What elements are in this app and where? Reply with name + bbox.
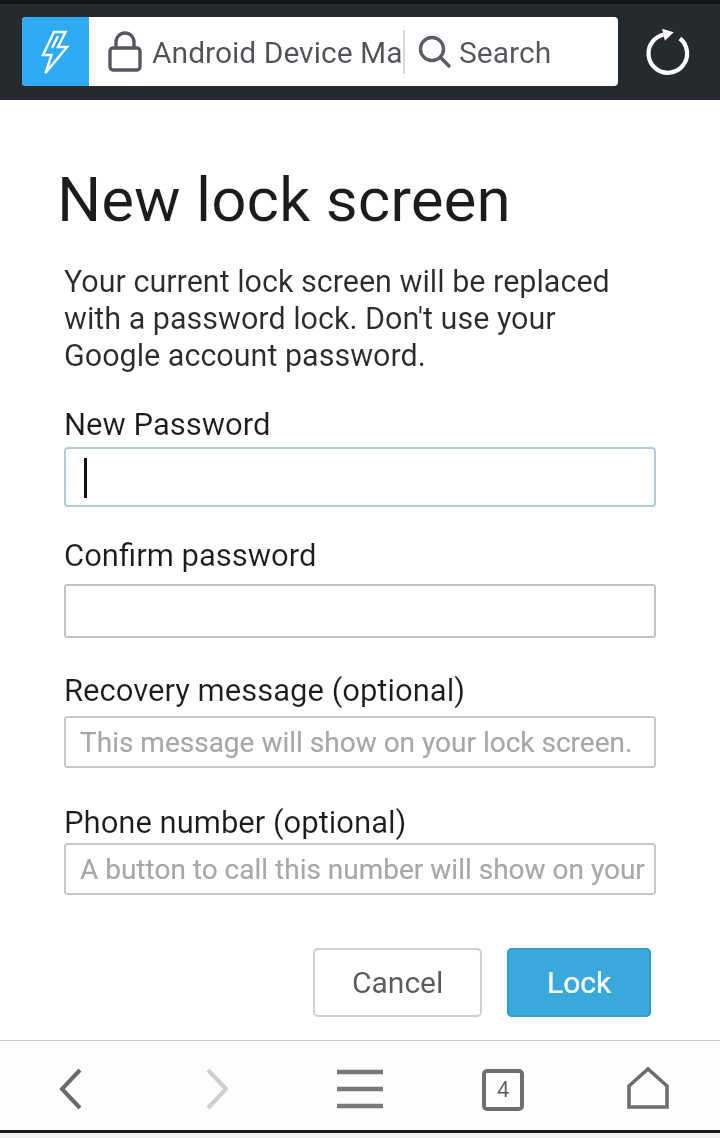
staticText: Your current lock screen will be replace… xyxy=(64,264,610,374)
button[interactable] xyxy=(627,1067,669,1109)
button[interactable] xyxy=(64,584,656,638)
button[interactable]: 4 xyxy=(482,1069,524,1111)
button[interactable]: Android Device Ma xyxy=(22,17,618,86)
button[interactable]: A button to call this number will show o… xyxy=(64,843,656,895)
button[interactable] xyxy=(337,1069,383,1109)
button[interactable] xyxy=(643,28,693,78)
staticText: New lock screen xyxy=(57,163,511,236)
button[interactable] xyxy=(64,447,656,507)
staticText: 4 xyxy=(497,1077,510,1103)
button[interactable] xyxy=(196,1068,236,1110)
staticText: Phone number (optional) xyxy=(64,804,407,840)
staticText: Confirm password xyxy=(64,537,317,573)
button[interactable]: Lock xyxy=(507,948,651,1017)
staticText: A button to call this number will show o… xyxy=(80,853,656,886)
staticText: Recovery message (optional) xyxy=(64,672,466,708)
staticText: This message will show on your lock scre… xyxy=(80,726,633,759)
staticText: New Password xyxy=(64,406,271,442)
button[interactable]: This message will show on your lock scre… xyxy=(64,716,656,768)
staticText: Search xyxy=(459,35,552,70)
button[interactable] xyxy=(52,1068,92,1110)
staticText: Lock xyxy=(547,965,612,1000)
button[interactable]: Cancel xyxy=(313,948,482,1017)
staticText: Cancel xyxy=(352,965,444,1000)
staticText: Android Device Ma xyxy=(152,35,403,70)
